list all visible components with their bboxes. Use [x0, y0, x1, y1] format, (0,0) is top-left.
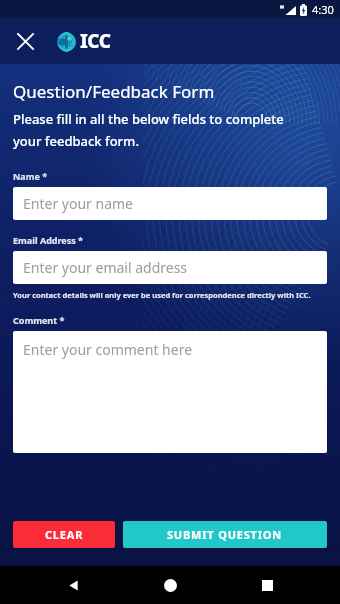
- staticText: SUBMIT QUESTION: [167, 527, 283, 542]
- staticText: Name *: [13, 170, 48, 182]
- staticText: Comment *: [13, 314, 65, 326]
- staticText: your feedback form.: [13, 132, 139, 150]
- button[interactable]: Close: [8, 24, 42, 58]
- staticText: Question/Feedback Form: [13, 80, 215, 103]
- staticText: Enter your name: [23, 194, 133, 213]
- staticText: 4:30: [312, 2, 334, 17]
- button[interactable]: Recent apps: [243, 566, 291, 604]
- staticText: Email Address *: [13, 234, 83, 246]
- button[interactable]: CLEAR: [13, 521, 115, 548]
- staticText: Please fill in all the below fields to c…: [13, 110, 284, 128]
- button[interactable]: ICC: [57, 28, 111, 54]
- button[interactable]: SUBMIT QUESTION: [123, 521, 327, 548]
- staticText: Your contact details will only ever be u…: [13, 290, 311, 300]
- button[interactable]: Enter your email address: [13, 251, 327, 284]
- button[interactable]: Home: [146, 566, 194, 604]
- staticText: Enter your comment here: [23, 340, 193, 359]
- button[interactable]: Back: [49, 566, 97, 604]
- staticText: Enter your email address: [23, 258, 188, 277]
- button[interactable]: Enter your comment here: [13, 331, 327, 453]
- staticText: CLEAR: [45, 527, 84, 542]
- button[interactable]: Enter your name: [13, 187, 327, 220]
- staticText: ICC: [80, 28, 111, 54]
